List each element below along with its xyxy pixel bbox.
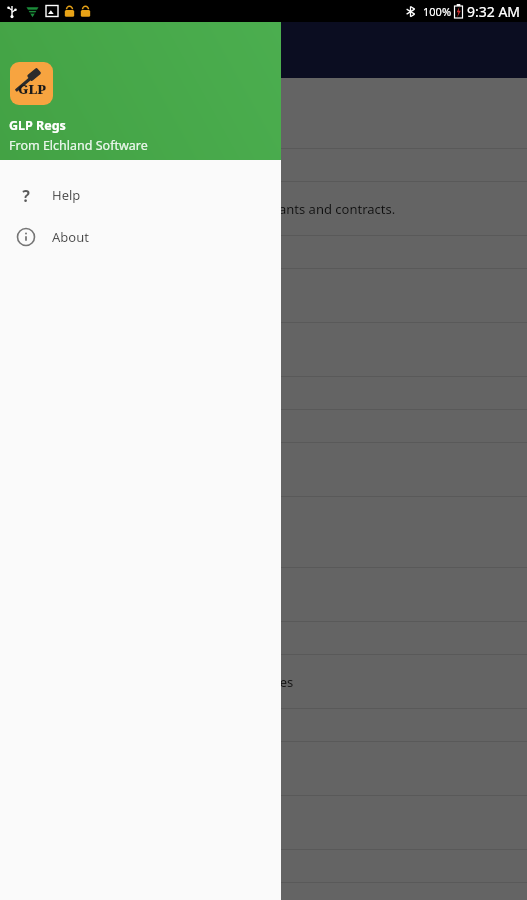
staticText: ?: [22, 185, 30, 205]
staticText: GLP: [18, 80, 46, 98]
staticText: Inspection of a testing facility: [16, 243, 196, 261]
button[interactable]: Applicability to studies performed under…: [0, 182, 527, 236]
button[interactable]: General: [0, 568, 527, 622]
button[interactable]: Testing facility management: [0, 377, 527, 410]
staticText: From Elchland Software: [9, 137, 148, 154]
button[interactable]: Equipment: [0, 796, 527, 850]
staticText: Applicability to studies performed under…: [16, 200, 396, 218]
staticText: Scope: [16, 156, 53, 174]
staticText: About: [52, 228, 89, 246]
button[interactable]: Organization and personnel: [0, 323, 527, 377]
button[interactable]: Maintenance and calibration of equipment: [0, 883, 527, 900]
button[interactable]: Study director: [0, 410, 527, 443]
button[interactable]: Help: [0, 174, 281, 216]
button[interactable]: GOOD LABORATORY PRACTICE FOR NONCLINICAL…: [0, 78, 527, 149]
staticText: 9:32 AM: [467, 2, 521, 21]
button[interactable]: Quality assurance unit: [0, 443, 527, 497]
staticText: Help: [52, 186, 81, 204]
button[interactable]: Inspection of a testing facility: [0, 236, 527, 269]
staticText: Facilities for handling test and control…: [16, 673, 294, 691]
button[interactable]: Definitions: [0, 269, 527, 323]
staticText: GLP Regs: [9, 117, 66, 134]
button[interactable]: Facilities for handling test and control…: [0, 655, 527, 709]
button[interactable]: Scope: [0, 149, 527, 182]
button[interactable]: Facilities: [0, 497, 527, 568]
button[interactable]: Laboratory operation areas: [0, 709, 527, 742]
button[interactable]: Specimen and data storage facilities: [0, 742, 527, 796]
other: About: [16, 227, 36, 247]
other: Help: [16, 185, 36, 205]
button[interactable]: About: [0, 216, 281, 258]
staticText: GOOD LABORATORY PRACTICE FOR NONCLINICAL…: [16, 93, 257, 134]
button[interactable]: Animal care facilities: [0, 622, 527, 655]
button[interactable]: Equipment design: [0, 850, 527, 883]
staticText: 100%: [423, 4, 452, 19]
